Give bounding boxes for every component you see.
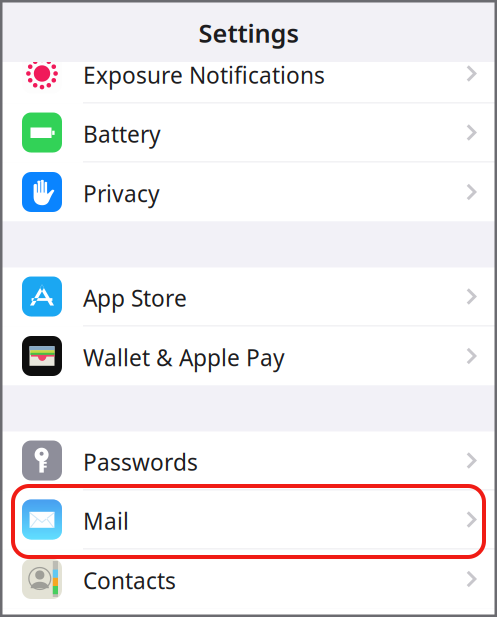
button[interactable]: Mail <box>0 490 497 549</box>
button[interactable]: Privacy <box>0 162 497 221</box>
button[interactable]: Passwords <box>0 431 497 490</box>
staticText: Battery <box>83 119 161 149</box>
staticText: Exposure Notifications <box>83 60 325 90</box>
button[interactable]: App Store <box>0 267 497 326</box>
staticText: Mail <box>83 506 129 536</box>
staticText: Contacts <box>83 565 176 595</box>
staticText: Settings <box>198 16 298 50</box>
staticText: Passwords <box>83 447 198 477</box>
staticText: Wallet & Apple Pay <box>83 342 285 372</box>
button[interactable]: Wallet & Apple Pay <box>0 326 497 385</box>
staticText: App Store <box>83 283 187 313</box>
button[interactable]: Battery <box>0 103 497 162</box>
button[interactable]: Exposure Notifications <box>0 44 497 103</box>
button[interactable]: Contacts <box>0 549 497 608</box>
staticText: Privacy <box>83 178 160 208</box>
